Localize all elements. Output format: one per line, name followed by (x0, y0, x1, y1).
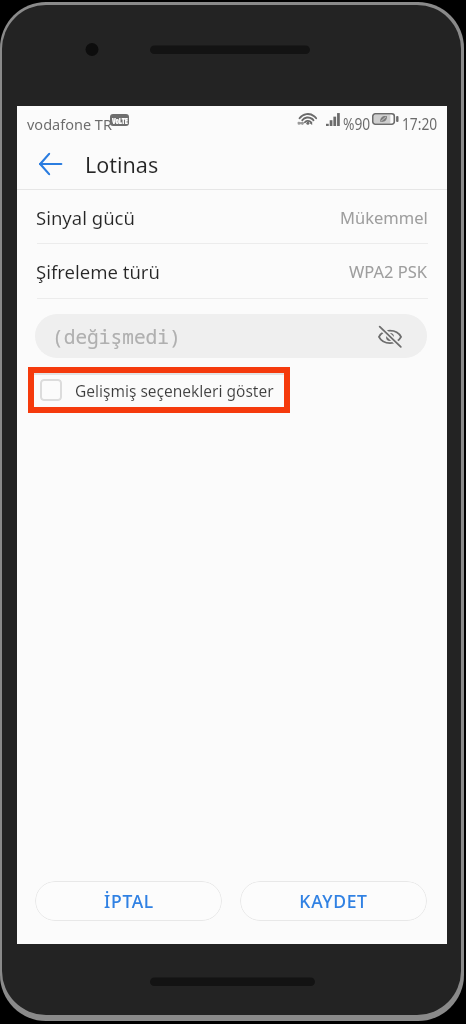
button[interactable]: İPTAL (35, 881, 222, 921)
staticText: vodafone TR (27, 114, 112, 134)
staticText: Lotinas (85, 150, 159, 179)
button[interactable]: Şifreleme türü (17, 244, 447, 298)
button[interactable]: Show password (375, 321, 405, 351)
staticText: WPA2 PSK (349, 260, 428, 282)
button[interactable]: Back (26, 140, 74, 188)
button[interactable]: Gelişmiş seçenekleri göster (28, 367, 290, 413)
staticText: Sinyal gücü (36, 205, 135, 230)
button[interactable]: KAYDET (240, 881, 427, 921)
staticText: %90 (343, 113, 370, 135)
button[interactable]: (değişmedi) (35, 314, 427, 358)
staticText: KAYDET (299, 889, 368, 913)
staticText: 17:20 (402, 113, 437, 135)
staticText: VoLTE (112, 115, 128, 125)
staticText: Şifreleme türü (36, 259, 160, 284)
staticText: İPTAL (104, 889, 154, 913)
staticText: (değişmedi) (52, 323, 181, 350)
button[interactable]: Sinyal gücü (17, 190, 447, 244)
staticText: Mükemmel (340, 206, 428, 228)
staticText: Gelişmiş seçenekleri göster (75, 380, 274, 401)
